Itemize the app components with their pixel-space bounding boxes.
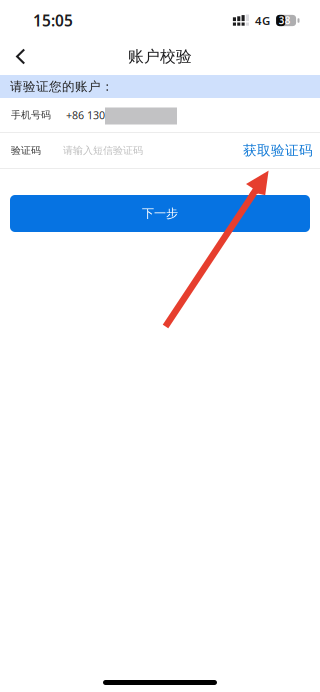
staticText: 获取验证码 [243,142,313,159]
staticText: 验证码 [11,144,41,157]
button[interactable]: 获取验证码 [231,133,320,168]
staticText: 15:05 [33,10,73,31]
staticText: 请验证您的账户： [10,79,114,94]
staticText: 账户校验 [128,47,192,66]
staticText: 手机号码 [11,109,51,121]
staticText: 下一步 [142,206,178,221]
staticText: 请输入短信验证码 [63,144,143,157]
staticText: 4G [255,13,270,28]
button[interactable]: Back [5,38,36,75]
staticText: 38 [279,14,291,27]
button[interactable]: 下一步 [10,195,310,232]
staticText: +86 1300 [66,108,111,122]
